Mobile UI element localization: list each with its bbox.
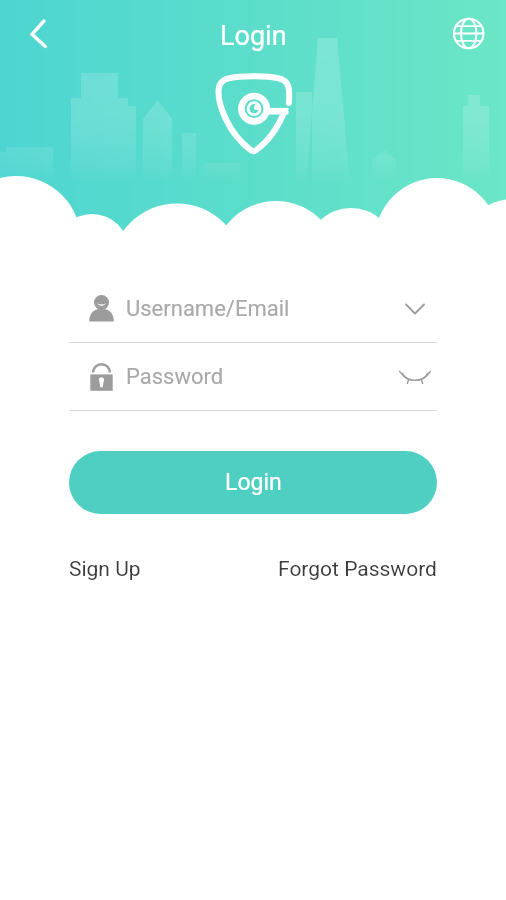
staticText: Username/Email [126, 296, 290, 322]
button[interactable]: Language [445, 10, 493, 58]
button[interactable]: Forgot Password [278, 557, 437, 582]
button[interactable]: Login [69, 451, 437, 514]
staticText: Login [225, 469, 282, 496]
button[interactable]: Show password [397, 362, 433, 392]
button[interactable]: Back [10, 10, 58, 58]
staticText: Forgot Password [278, 557, 437, 582]
staticText: Sign Up [69, 557, 141, 582]
button[interactable]: Sign Up [69, 557, 141, 582]
button[interactable]: Show accounts [397, 294, 433, 324]
staticText: Login [220, 20, 287, 52]
staticText: Password [126, 364, 224, 390]
